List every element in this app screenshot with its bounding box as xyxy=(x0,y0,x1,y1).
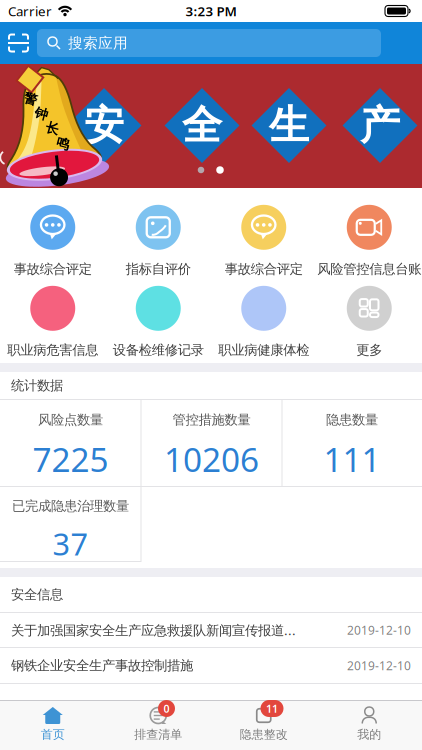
staticText: 隐患数量 xyxy=(326,412,378,428)
button[interactable]: 职业病危害信息 xyxy=(0,284,105,360)
staticText: 已完成隐患治理数量 xyxy=(12,498,129,514)
staticText: 搜索应用 xyxy=(68,34,128,52)
staticText: 风险点数量 xyxy=(38,412,103,428)
staticText: 指标自评价 xyxy=(126,261,191,277)
staticText: 鸣 xyxy=(54,137,67,153)
staticText: 11 xyxy=(266,701,278,716)
staticText: 2019-12-10 xyxy=(347,657,411,673)
button[interactable]: 风险管控信息台账 xyxy=(316,203,422,279)
staticText: 钢铁企业安全生产事故控制措施 xyxy=(11,657,193,674)
button[interactable]: 11 xyxy=(211,701,316,750)
staticText: 设备检维修记录 xyxy=(113,342,204,358)
staticText: 长 xyxy=(45,121,58,137)
staticText: 更多 xyxy=(356,342,382,358)
staticText: 统计数据 xyxy=(11,377,63,394)
staticText: 职业病健康体检 xyxy=(218,342,309,358)
button[interactable]: 关于加强国家安全生产应急救援队新闻宣传报道... xyxy=(0,613,422,647)
button[interactable]: 设备检维修记录 xyxy=(105,284,211,360)
staticText: 首页 xyxy=(41,727,65,742)
staticText: 生 xyxy=(269,101,309,150)
staticText: 关于加强国家安全生产应急救援队新闻宣传报道... xyxy=(11,621,296,639)
staticText: 3:23 PM xyxy=(185,2,236,20)
button[interactable]: 事故综合评定 xyxy=(0,203,105,279)
staticText: 警 xyxy=(27,89,40,105)
button[interactable]: 搜索应用 xyxy=(37,29,381,57)
staticText: 管控措施数量 xyxy=(172,412,250,428)
staticText: 安 xyxy=(84,101,124,150)
button[interactable]: 扫一扫 xyxy=(0,22,37,64)
staticText: 事故综合评定 xyxy=(14,261,92,277)
button[interactable]: 首页 xyxy=(0,701,105,750)
staticText: 风险管控信息台账 xyxy=(317,261,421,277)
button[interactable]: 0 xyxy=(105,701,211,750)
button[interactable]: 指标自评价 xyxy=(105,203,211,279)
staticText: 排查清单 xyxy=(134,727,182,742)
button[interactable]: 事故综合评定 xyxy=(211,203,316,279)
staticText: 隐患整改 xyxy=(240,727,288,742)
staticText: 111 xyxy=(323,437,380,481)
button[interactable]: 我的 xyxy=(316,701,422,750)
staticText: 37 xyxy=(52,523,88,564)
button[interactable]: 安全生产 xyxy=(0,64,422,188)
staticText: 钟 xyxy=(36,105,49,121)
staticText: 2019-12-10 xyxy=(347,622,411,638)
button[interactable]: 更多 xyxy=(316,284,422,360)
staticText: 职业病危害信息 xyxy=(7,342,98,358)
staticText: 我的 xyxy=(357,727,381,742)
staticText: 10206 xyxy=(164,437,259,481)
staticText: 0 xyxy=(163,701,169,716)
staticText: 事故综合评定 xyxy=(225,261,303,277)
staticText: Carrier xyxy=(8,2,52,20)
button[interactable]: 职业病健康体检 xyxy=(211,284,316,360)
staticText: 全 xyxy=(182,101,222,150)
staticText: 7225 xyxy=(32,437,108,481)
staticText: 安全信息 xyxy=(11,586,63,603)
staticText: 产 xyxy=(360,101,400,150)
button[interactable]: 钢铁企业安全生产事故控制措施 xyxy=(0,648,422,683)
